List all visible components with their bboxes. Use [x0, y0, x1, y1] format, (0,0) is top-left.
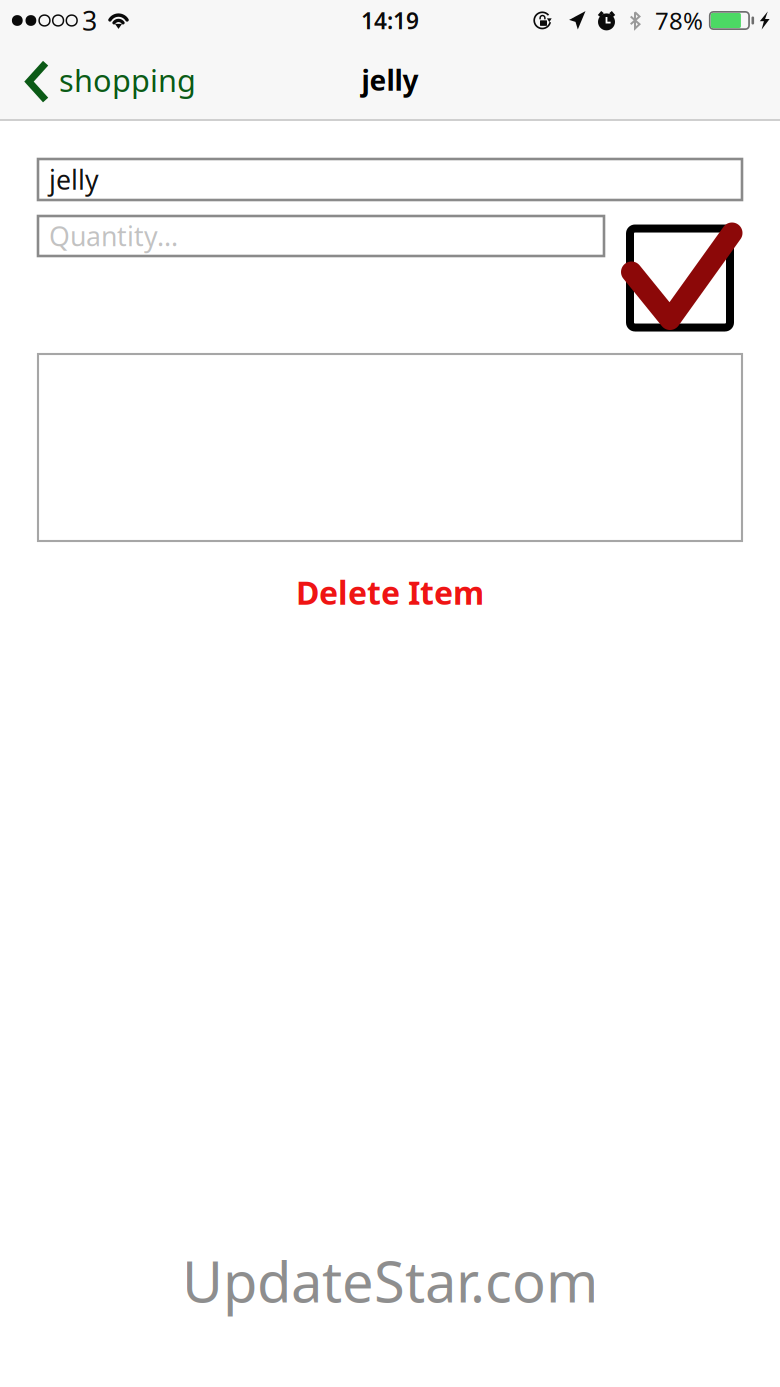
button[interactable]: Quantity...: [38, 216, 604, 256]
staticText: Quantity...: [49, 218, 178, 254]
staticText: jelly: [361, 61, 418, 99]
staticText: UpdateStar.com: [182, 1244, 598, 1318]
button[interactable]: Notes: [38, 354, 742, 541]
staticText: 3: [82, 3, 97, 38]
button[interactable]: jelly: [38, 159, 742, 200]
button[interactable]: Toggle purchased: [619, 217, 742, 334]
staticText: 78%: [655, 5, 703, 36]
staticText: 14:19: [361, 5, 419, 35]
staticText: jelly: [49, 162, 99, 197]
staticText: Delete Item: [296, 571, 484, 613]
button[interactable]: shopping: [0, 48, 210, 112]
button[interactable]: Delete Item: [0, 563, 780, 621]
staticText: shopping: [59, 60, 196, 100]
